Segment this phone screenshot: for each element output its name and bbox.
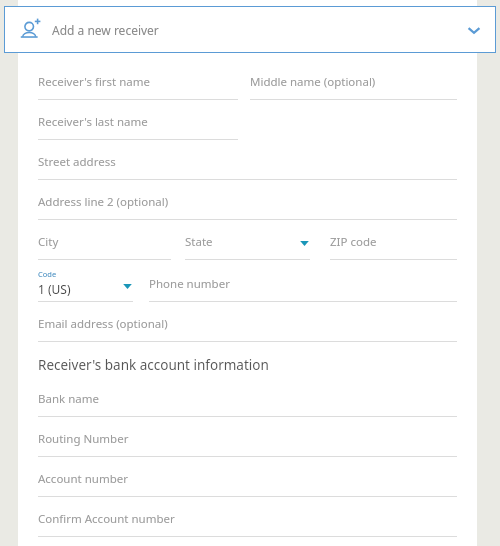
staticText: Receiver's bank account information xyxy=(38,356,269,374)
staticText: Street address xyxy=(38,154,116,170)
staticText: ZIP code xyxy=(330,234,377,250)
button[interactable]: Phone number xyxy=(149,273,457,302)
staticText: 1 (US) xyxy=(38,281,71,297)
button[interactable]: Receiver's last name xyxy=(38,111,238,140)
staticText: Middle name (optional) xyxy=(250,74,376,90)
button[interactable]: Bank name xyxy=(38,388,457,417)
button[interactable]: Receiver's first name xyxy=(38,71,238,100)
button[interactable]: Street address xyxy=(38,151,457,180)
staticText: Receiver's last name xyxy=(38,114,148,130)
staticText: Account number xyxy=(38,471,128,487)
staticText: City xyxy=(38,234,59,250)
button[interactable]: Account number xyxy=(38,468,457,497)
staticText: Routing Number xyxy=(38,431,129,447)
staticText: Phone number xyxy=(149,276,230,292)
button[interactable]: State xyxy=(185,231,310,260)
other: Open dropdown xyxy=(299,237,310,248)
other: Select country code xyxy=(122,278,133,289)
staticText: Add a new receiver xyxy=(52,22,159,38)
staticText: Code xyxy=(38,269,57,279)
button[interactable]: Add a new receiver xyxy=(4,6,496,53)
staticText: Email address (optional) xyxy=(38,316,168,332)
button[interactable]: Routing Number xyxy=(38,428,457,457)
staticText: State xyxy=(185,234,213,250)
button[interactable]: City xyxy=(38,231,171,260)
staticText: Bank name xyxy=(38,391,99,407)
staticText: Receiver's first name xyxy=(38,74,151,90)
staticText: Address line 2 (optional) xyxy=(38,194,169,210)
button[interactable]: Code xyxy=(38,269,133,302)
staticText: Confirm Account number xyxy=(38,511,175,527)
button[interactable]: Email address (optional) xyxy=(38,313,457,342)
button[interactable]: Confirm Account number xyxy=(38,508,457,537)
button[interactable]: Middle name (optional) xyxy=(250,71,457,100)
other: Expand xyxy=(466,22,482,38)
button[interactable]: ZIP code xyxy=(330,231,457,260)
button[interactable]: Address line 2 (optional) xyxy=(38,191,457,220)
